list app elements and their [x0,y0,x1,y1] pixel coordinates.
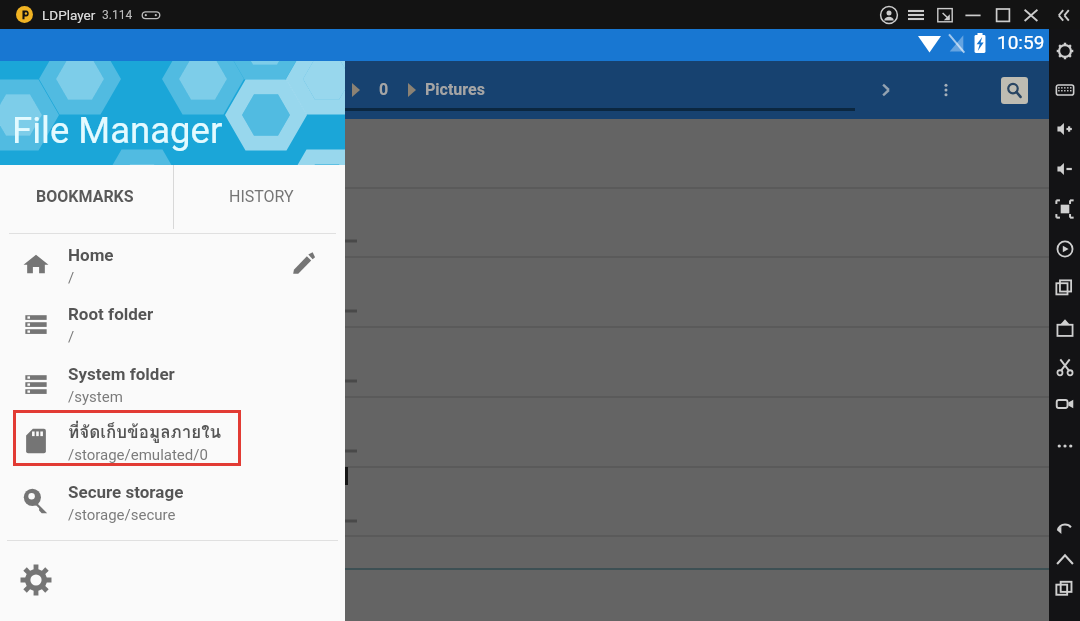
button[interactable]: Install APK [1049,312,1080,343]
button[interactable]: Volume up [1049,113,1080,144]
button[interactable]: Keyboard [1049,74,1080,105]
staticText: 0 [379,80,389,99]
button[interactable]: Maximize [989,1,1017,29]
button[interactable]: Fullscreen [1049,193,1080,224]
button[interactable]: Back [1049,514,1080,545]
staticText: File Manager [12,109,223,152]
button[interactable]: ที่จัดเก็บข้อมูลภายใน [0,416,345,474]
button[interactable]: Collapse [1050,1,1078,29]
staticText: 10:59 [997,31,1045,53]
button[interactable]: Record video [1049,388,1080,419]
button[interactable]: Home [0,239,345,297]
button[interactable]: System folder [0,358,345,416]
staticText: / [68,328,75,346]
button[interactable]: Menu [902,1,930,29]
staticText: Secure storage [68,482,184,502]
button[interactable]: Edit [288,247,320,279]
staticText: BOOKMARKS [36,187,134,206]
button[interactable]: More options [928,72,964,108]
button[interactable]: Screenshot [1049,233,1080,264]
staticText: /storage/secure [68,506,176,524]
button[interactable]: Secure storage [0,476,345,534]
button[interactable]: Volume down [1049,153,1080,184]
staticText: ที่จัดเก็บข้อมูลภายใน [68,418,222,445]
button[interactable]: Minimize [959,1,987,29]
button[interactable]: Recents [1049,573,1080,604]
staticText: / [68,269,75,287]
button[interactable]: Root folder [0,298,345,356]
staticText: 3.114 [102,8,133,22]
button[interactable]: Search [1001,77,1028,104]
button[interactable]: BOOKMARKS [0,165,173,229]
button[interactable]: Resize [931,1,959,29]
staticText: LDPlayer [42,7,96,23]
button[interactable]: Home [1049,544,1080,575]
staticText: Home [68,245,114,265]
staticText: /system [68,388,123,406]
button[interactable]: Settings [19,563,52,596]
button[interactable]: Account [875,1,903,29]
button[interactable]: Cut [1049,351,1080,382]
staticText: HISTORY [229,187,294,206]
staticText: Root folder [68,304,154,324]
button[interactable]: Close [1017,1,1045,29]
button[interactable]: More [1049,430,1080,461]
staticText: /storage/emulated/0 [68,446,208,464]
button[interactable]: Multi instance [1049,273,1080,304]
button[interactable]: HISTORY [174,165,345,229]
button[interactable]: Settings [1049,35,1080,66]
staticText: Pictures [425,80,485,99]
button[interactable]: Forward [868,72,904,108]
staticText: System folder [68,364,175,384]
